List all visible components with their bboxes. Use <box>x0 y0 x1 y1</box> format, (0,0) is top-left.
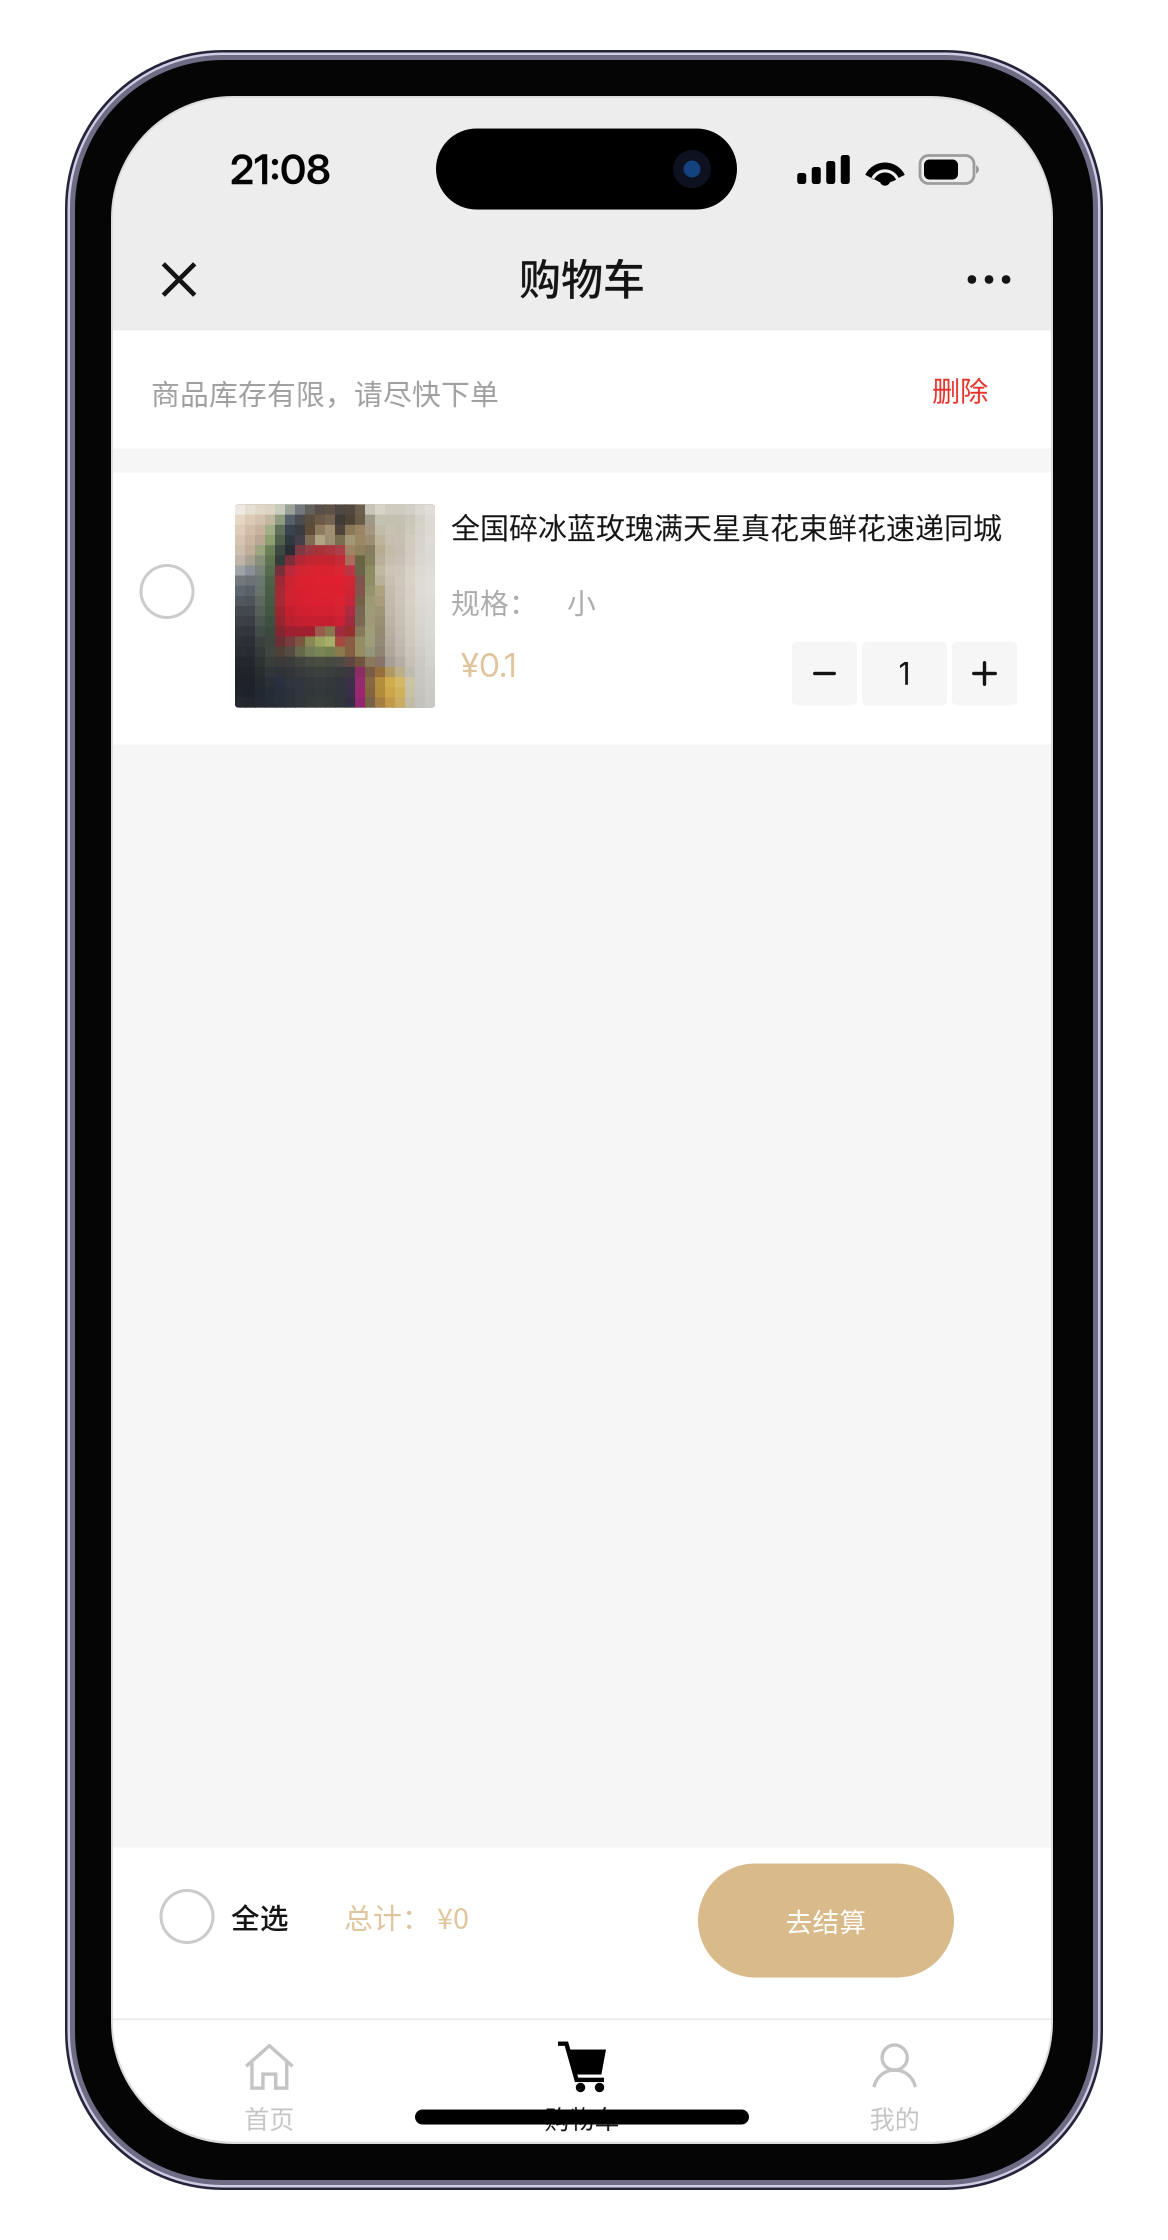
button[interactable]: Select item <box>115 539 219 643</box>
button[interactable]: 我的 <box>738 2018 1051 2147</box>
button[interactable]: 去结算 <box>698 1863 954 1977</box>
staticText: 首页 <box>244 2099 294 2136</box>
button[interactable]: Increase quantity <box>952 641 1017 705</box>
button[interactable]: 删除 <box>910 350 1010 428</box>
button[interactable]: Close <box>131 231 227 327</box>
staticText: 1 <box>898 655 910 692</box>
button[interactable]: 购物车 <box>426 2018 738 2147</box>
button[interactable]: More options <box>941 231 1037 327</box>
staticText: 全国碎冰蓝玫瑰满天星真花束鲜花速递同城 <box>451 505 1002 547</box>
button[interactable]: 首页 <box>113 2018 426 2147</box>
staticText: 购物车 <box>544 2099 619 2136</box>
staticText: 全选 <box>231 1896 289 1937</box>
staticText: 总计： ¥0 <box>344 1895 469 1937</box>
staticText: 规格： 小 <box>451 580 596 622</box>
staticText: 21:08 <box>230 144 331 194</box>
staticText: 我的 <box>870 2099 920 2136</box>
staticText: ¥0.1 <box>461 644 517 685</box>
staticText: 删除 <box>932 369 988 410</box>
staticText: 购物车 <box>519 246 645 307</box>
staticText: 去结算 <box>785 1901 866 1940</box>
button[interactable]: Decrease quantity <box>792 641 857 705</box>
button[interactable]: 全选 <box>146 1868 304 1964</box>
staticText: 商品库存有限，请尽快下单 <box>151 371 499 413</box>
